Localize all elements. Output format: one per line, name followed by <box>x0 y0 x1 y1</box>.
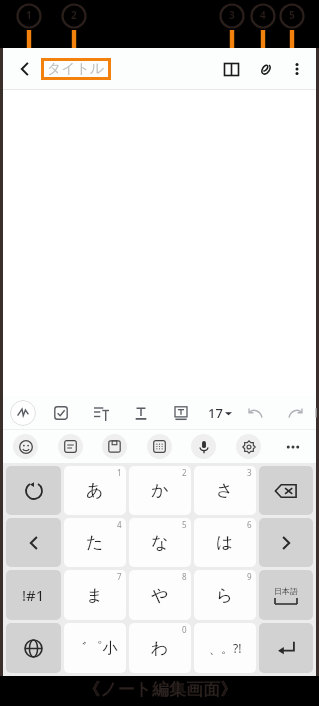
staticText: ら <box>216 585 234 606</box>
staticText: 9 <box>247 571 252 582</box>
staticText: ゛゜小 <box>72 639 118 658</box>
button[interactable]: Checklist <box>50 402 72 424</box>
staticText: 4 <box>260 8 266 22</box>
staticText: 6 <box>247 519 252 530</box>
staticText: や <box>151 585 169 606</box>
button[interactable]: Back <box>11 55 39 83</box>
button[interactable]: Emoji <box>13 434 38 459</box>
button[interactable]: Delete <box>259 466 313 515</box>
button[interactable]: た <box>64 518 126 567</box>
button[interactable]: Voice input <box>191 434 216 459</box>
button[interactable]: Space <box>259 570 313 620</box>
staticText: 3 <box>247 467 252 478</box>
button[interactable]: Text box <box>170 402 192 424</box>
staticText: 2 <box>71 8 77 22</box>
button[interactable]: Undo <box>244 402 266 424</box>
staticText: は <box>216 532 234 553</box>
button[interactable]: 17 <box>206 404 234 422</box>
staticText: 8 <box>182 571 187 582</box>
button[interactable]: Redo <box>284 402 306 424</box>
staticText: さ <box>216 480 234 501</box>
button[interactable]: ま <box>64 570 126 620</box>
button[interactable]: ら <box>194 570 256 620</box>
staticText: た <box>86 532 104 553</box>
button[interactable]: More <box>280 434 306 460</box>
button[interactable]: Cursor right <box>259 518 313 567</box>
staticText: 17 <box>208 404 223 422</box>
staticText: 、。?! <box>209 640 242 656</box>
button[interactable]: は <box>194 518 256 567</box>
staticText: 3 <box>229 8 235 22</box>
staticText: 1 <box>26 8 32 22</box>
staticText: 日本語 <box>274 586 298 596</box>
staticText: 1 <box>117 467 122 478</box>
button[interactable]: Change language <box>6 623 61 673</box>
staticText: か <box>151 480 169 501</box>
staticText: 4 <box>117 519 122 530</box>
button[interactable]: な <box>129 518 191 567</box>
button[interactable]: More options <box>284 56 310 82</box>
button[interactable]: や <box>129 570 191 620</box>
button[interactable]: さ <box>194 466 256 515</box>
button[interactable]: !#1 <box>6 570 61 620</box>
button[interactable]: Book view <box>218 56 244 82</box>
staticText: !#1 <box>22 585 45 605</box>
staticText: 《ノート編集画面》 <box>83 679 237 700</box>
button[interactable]: Undo <box>6 466 61 515</box>
staticText: 2 <box>182 467 187 478</box>
button[interactable]: Clipboard text <box>58 434 83 459</box>
button[interactable]: Enter <box>259 623 313 673</box>
staticText: わ <box>151 638 169 659</box>
staticText: タイトル <box>47 60 105 78</box>
staticText: 5 <box>289 8 295 22</box>
button[interactable]: Cursor left <box>6 518 61 567</box>
button[interactable]: わ <box>129 623 191 673</box>
button[interactable]: Text style <box>130 402 152 424</box>
staticText: 0 <box>182 624 187 635</box>
button[interactable]: ゛゜小 <box>64 623 126 673</box>
staticText: な <box>151 532 169 553</box>
button[interactable]: Paragraph <box>90 402 112 424</box>
staticText: 7 <box>117 571 122 582</box>
staticText: ま <box>86 585 104 606</box>
staticText: あ <box>86 480 104 501</box>
button[interactable]: あ <box>64 466 126 515</box>
button[interactable]: Save <box>102 434 127 459</box>
button[interactable]: Keypad <box>147 434 172 459</box>
button[interactable]: Pen <box>10 400 36 426</box>
button[interactable]: Attach <box>252 56 278 82</box>
staticText: 5 <box>182 519 187 530</box>
button[interactable]: Settings <box>236 434 261 459</box>
button[interactable]: 、。?! <box>194 623 256 673</box>
button[interactable]: タイトル <box>47 60 105 78</box>
button[interactable]: か <box>129 466 191 515</box>
